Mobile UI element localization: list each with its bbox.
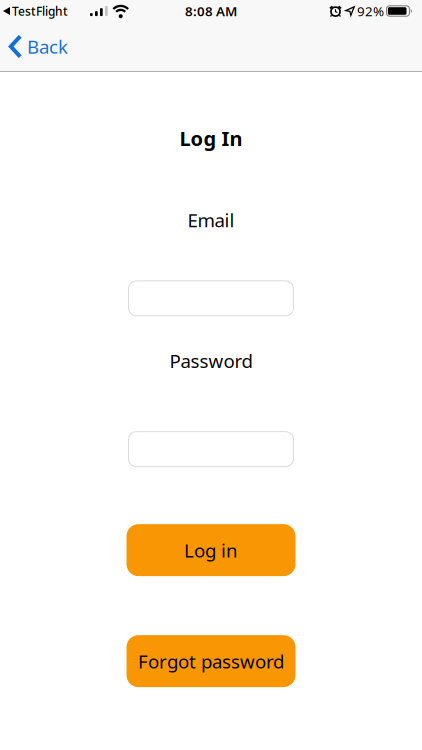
- button[interactable]: Back to TestFlight: [0, 3, 68, 19]
- button[interactable]: Password text field: [128, 431, 294, 467]
- staticText: Forgot password: [138, 649, 284, 673]
- staticText: Back: [27, 34, 68, 59]
- button[interactable]: Email text field: [128, 280, 294, 316]
- staticText: Email: [187, 208, 234, 232]
- staticText: Log In: [179, 125, 242, 152]
- staticText: 92%: [357, 2, 384, 20]
- button[interactable]: Back: [0, 34, 68, 59]
- button[interactable]: Forgot password: [126, 635, 295, 687]
- button[interactable]: Log in: [126, 524, 295, 576]
- staticText: Password: [169, 348, 252, 373]
- staticText: 8:08 AM: [185, 2, 237, 20]
- staticText: TestFlight: [12, 3, 68, 19]
- staticText: Log in: [184, 538, 238, 562]
